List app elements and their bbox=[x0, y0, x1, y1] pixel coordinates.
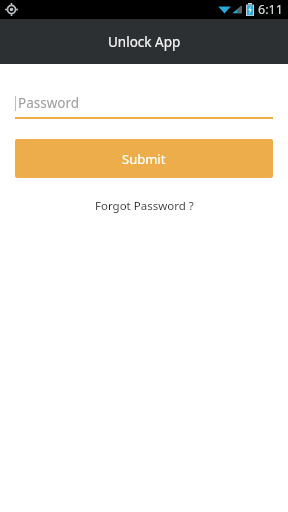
other: Location bbox=[5, 3, 18, 16]
staticText: Submit bbox=[122, 150, 166, 168]
staticText: Unlock App bbox=[108, 33, 181, 51]
button[interactable]: Submit bbox=[15, 139, 273, 178]
staticText: Forgot Password ? bbox=[95, 198, 194, 214]
staticText: 6:11 bbox=[258, 1, 283, 18]
button[interactable]: Password bbox=[15, 94, 273, 119]
staticText: Password bbox=[18, 94, 80, 112]
button[interactable]: Forgot Password ? bbox=[87, 194, 202, 218]
